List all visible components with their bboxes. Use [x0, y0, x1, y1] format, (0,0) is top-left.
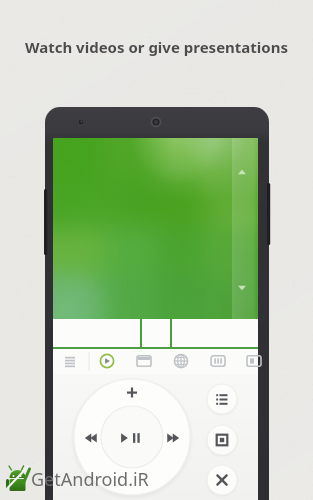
button[interactable]: Playlist [207, 384, 237, 414]
button[interactable]: Menu [53, 349, 88, 374]
button[interactable]: Stop [207, 425, 237, 455]
button[interactable]: Browser [156, 349, 190, 374]
button[interactable]: Play [88, 349, 122, 374]
button[interactable]: Fast forward [164, 423, 190, 451]
button[interactable]: Play or pause [101, 406, 163, 468]
staticText: Watch videos or give presentations [0, 37, 313, 57]
button[interactable]: Rewind [74, 423, 100, 451]
staticText: GetAndroid.iR [31, 467, 149, 492]
button[interactable]: Close [207, 465, 237, 495]
button[interactable]: Windows [122, 349, 156, 374]
button[interactable]: Navigation pad [74, 379, 190, 495]
button[interactable]: More [224, 349, 258, 374]
button[interactable]: Presentation [190, 349, 224, 374]
button[interactable]: Volume up [118, 379, 146, 403]
